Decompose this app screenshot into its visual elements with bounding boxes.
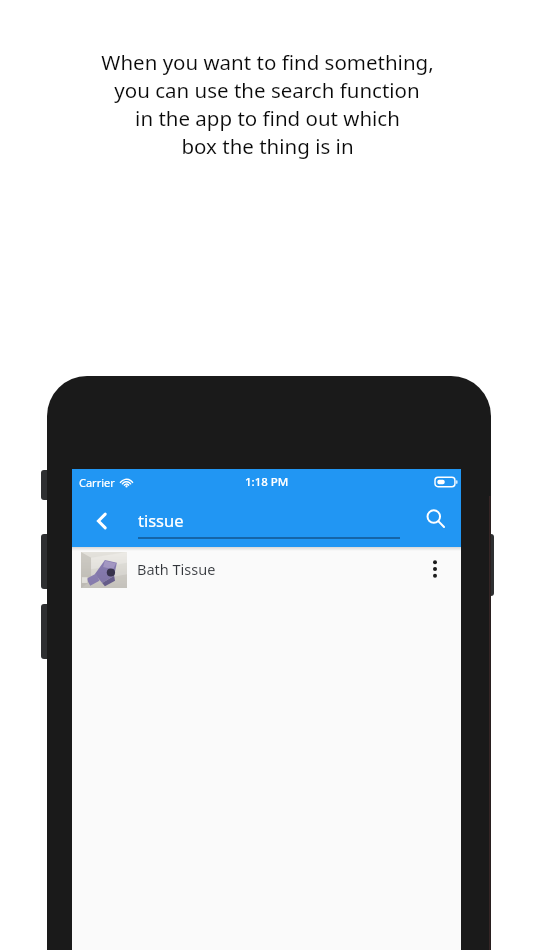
- staticText: Bath Tissue: [137, 559, 216, 579]
- button[interactable]: Search: [413, 496, 457, 540]
- staticText: tissue: [138, 509, 184, 531]
- staticText: 1:18 PM: [245, 474, 289, 490]
- staticText: box the thing is in: [181, 132, 354, 160]
- staticText: Carrier: [79, 475, 115, 490]
- staticText: When you want to find something,: [101, 48, 434, 76]
- button[interactable]: Bath Tissue: [72, 547, 461, 591]
- button[interactable]: More options: [417, 551, 453, 587]
- staticText: you can use the search function: [114, 76, 420, 104]
- staticText: in the app to find out which: [135, 104, 400, 132]
- button[interactable]: Back: [82, 501, 122, 541]
